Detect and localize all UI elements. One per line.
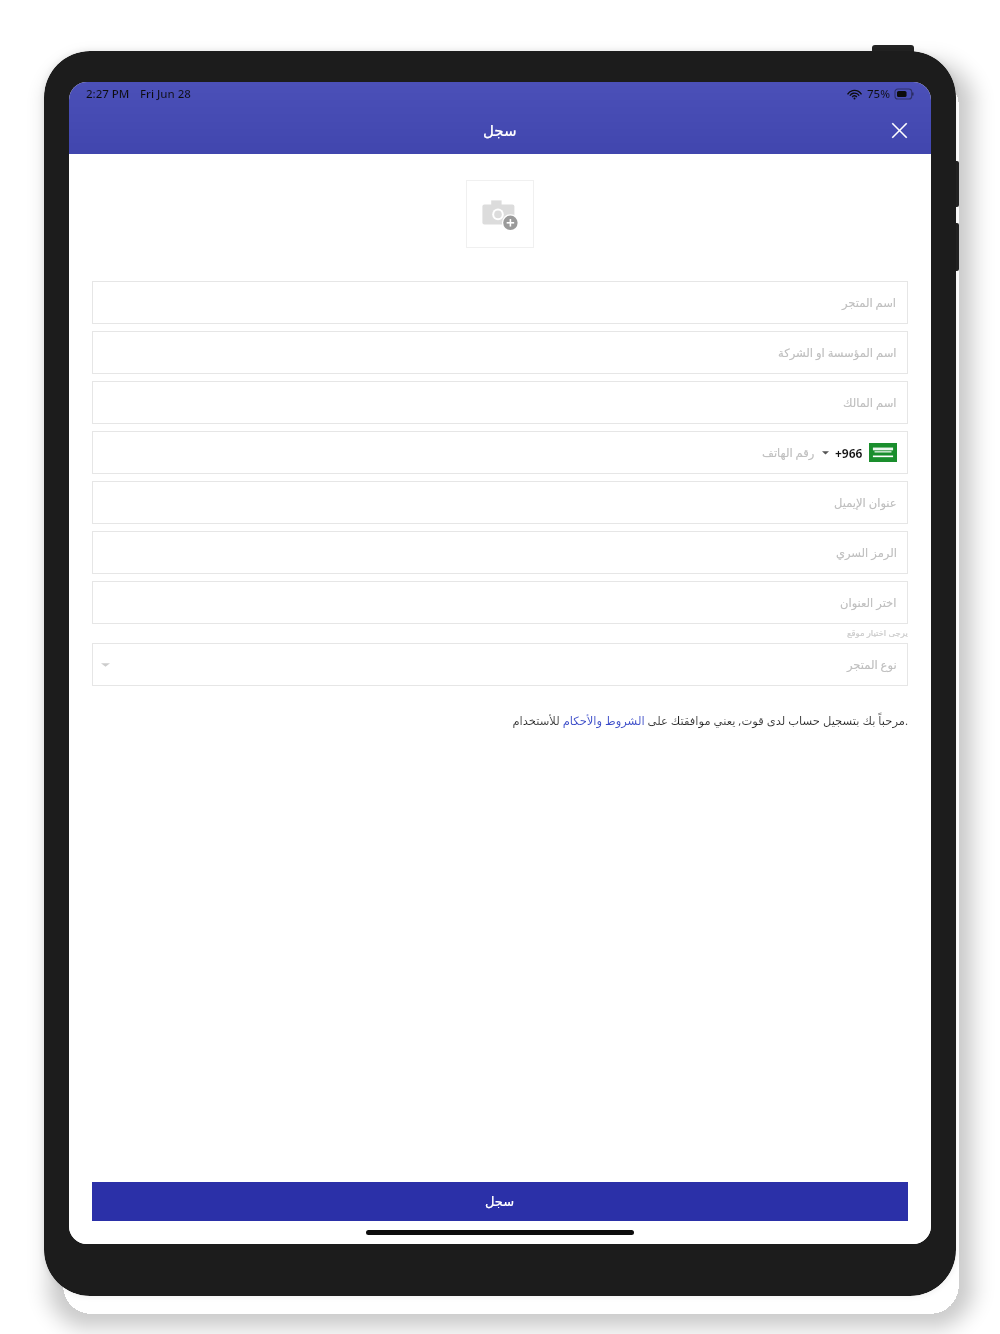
- staticText: سجل: [483, 122, 517, 139]
- staticText: سجل: [485, 1194, 515, 1209]
- staticText: نوع المتجر: [847, 657, 897, 673]
- staticText: عنوان الإيميل: [834, 495, 897, 511]
- button[interactable]: اختر العنوان: [92, 581, 908, 624]
- staticText: Fri Jun 28: [140, 86, 191, 102]
- staticText: مرحباً بك بتسجيل حساب لدى قوت, يعني مواف…: [512, 713, 908, 729]
- staticText: اختر العنوان: [840, 595, 897, 611]
- button[interactable]: Add photo: [466, 180, 534, 248]
- staticText: رقم الهاتف: [762, 445, 815, 461]
- staticText: اسم المتجر: [842, 295, 897, 311]
- button[interactable]: نوع المتجر: [92, 643, 908, 686]
- button[interactable]: عنوان الإيميل: [92, 481, 908, 524]
- button[interactable]: اسم المتجر: [92, 281, 908, 324]
- button[interactable]: اسم المؤسسة او الشركة: [92, 331, 908, 374]
- staticText: 2:27 PM: [86, 86, 130, 102]
- button[interactable]: Close: [875, 106, 923, 154]
- button[interactable]: رقم الهاتف: [92, 431, 908, 474]
- button[interactable]: اسم المالك: [92, 381, 908, 424]
- staticText: الرمز السري: [836, 545, 897, 561]
- staticText: يرجى اختيار موقع: [847, 627, 908, 639]
- staticText: 75%: [867, 86, 890, 102]
- staticText: +966: [835, 445, 863, 461]
- button[interactable]: سجل: [92, 1182, 908, 1221]
- staticText: اسم المالك: [843, 395, 897, 411]
- staticText: اسم المؤسسة او الشركة: [778, 345, 897, 361]
- button[interactable]: الرمز السري: [92, 531, 908, 574]
